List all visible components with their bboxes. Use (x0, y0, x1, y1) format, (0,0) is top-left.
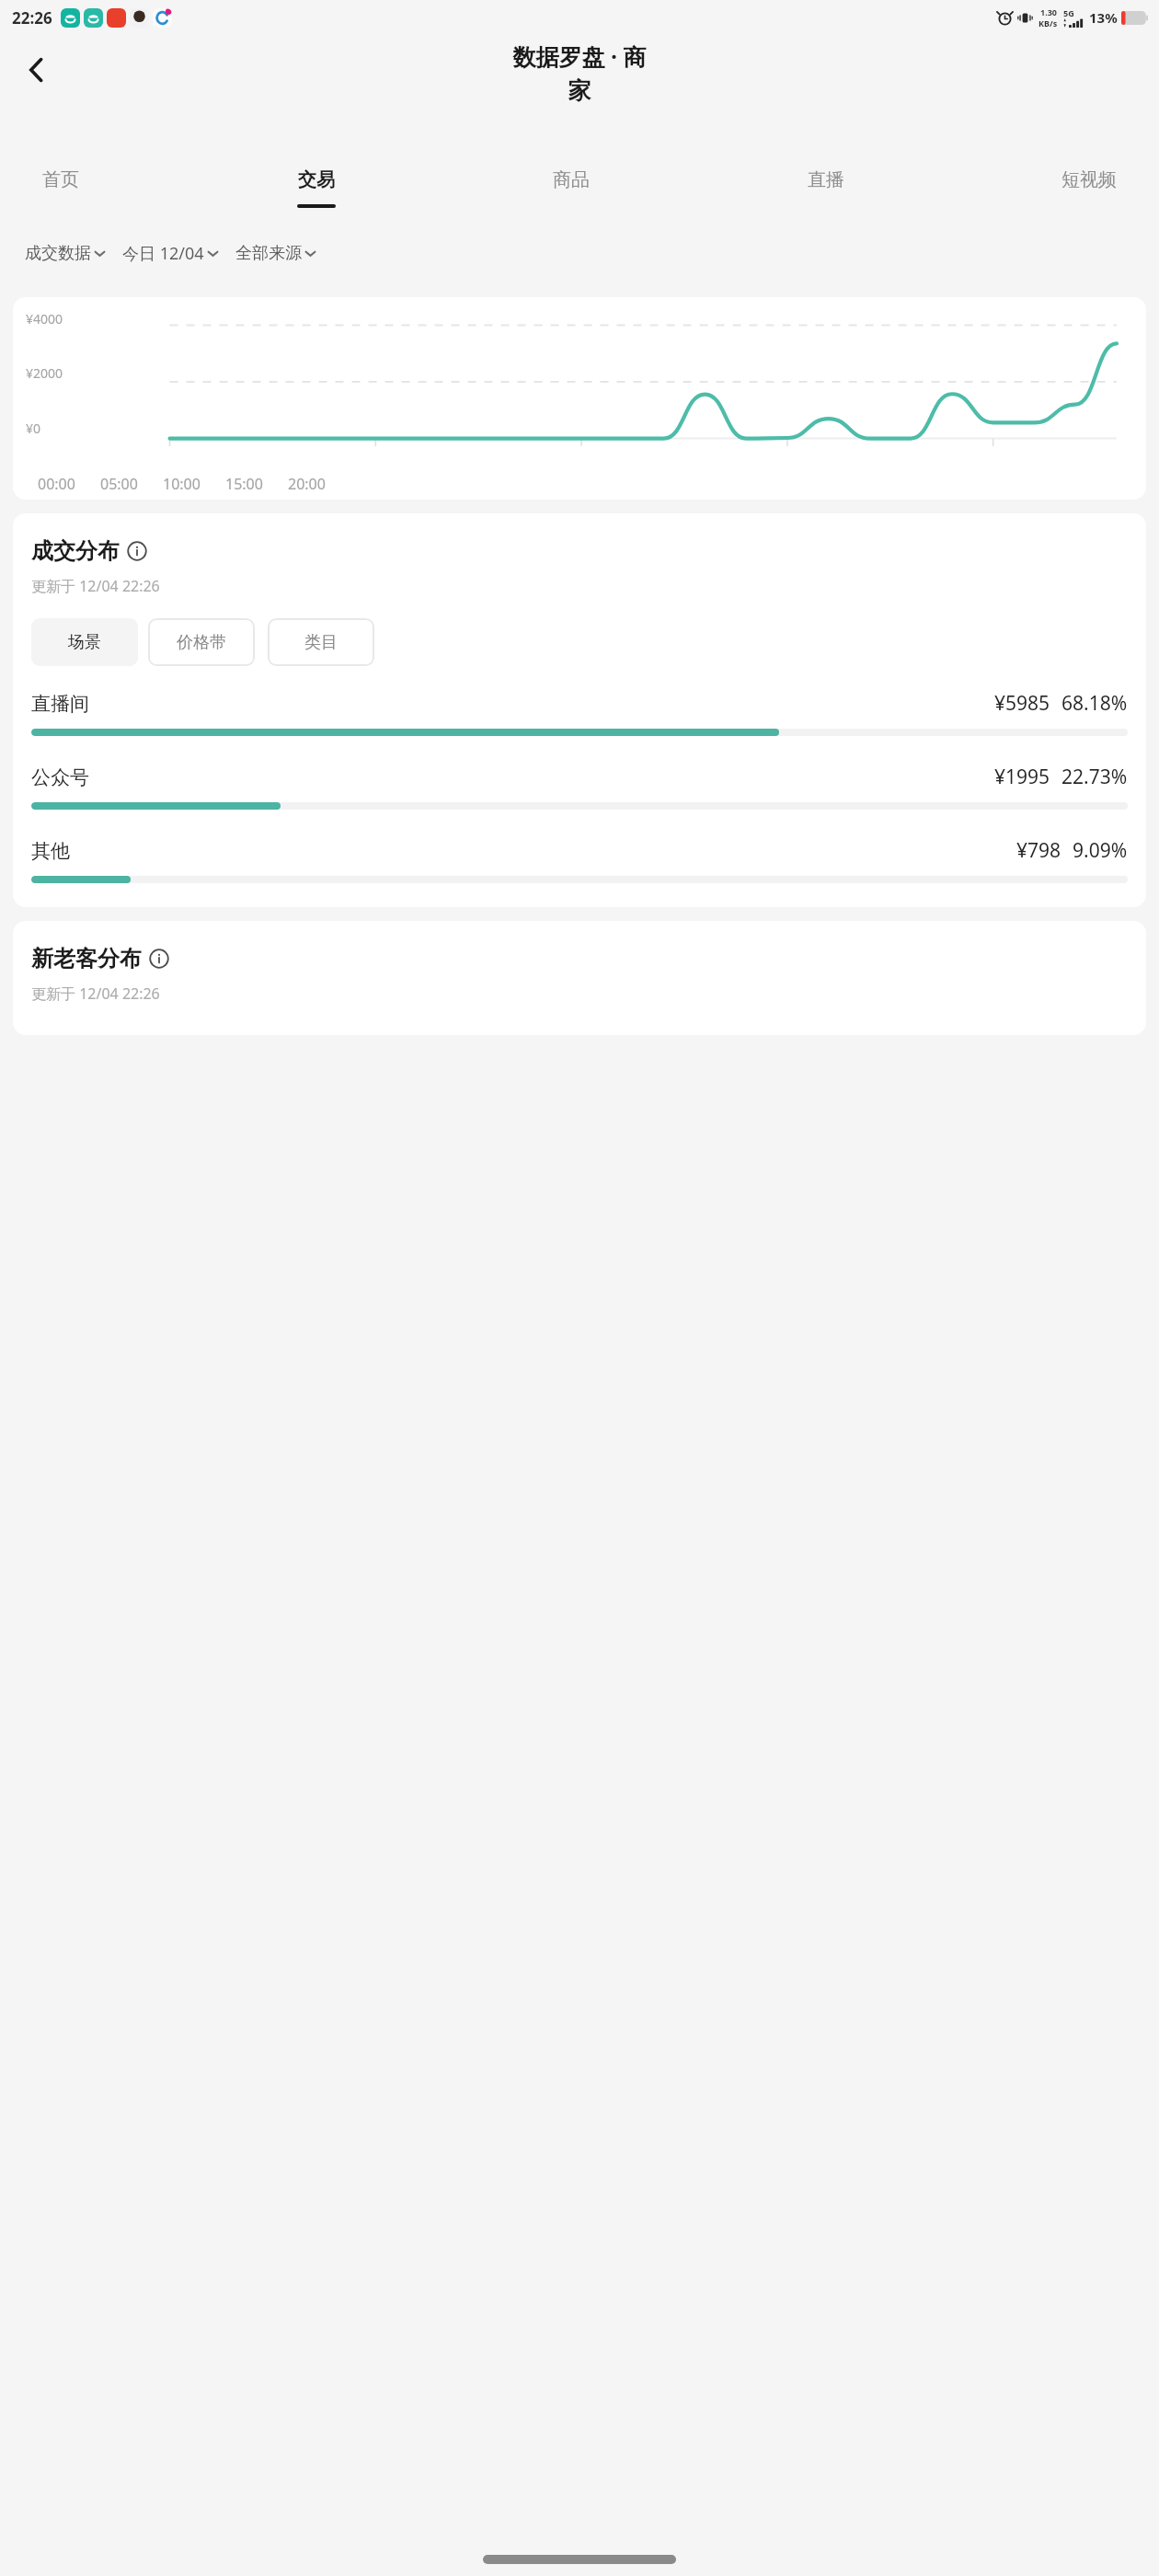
button[interactable]: 直播 (802, 168, 850, 208)
staticText: 交易 (298, 168, 335, 191)
staticText: 05:00 (100, 474, 138, 494)
button[interactable]: 首页 (37, 168, 85, 208)
staticText: 场景 (68, 632, 101, 653)
staticText: 更新于 12/04 22:26 (31, 576, 160, 596)
staticText: 直播间 (31, 692, 89, 716)
button[interactable]: Info (149, 949, 169, 969)
staticText: 10:00 (163, 474, 201, 494)
staticText: 数据罗盘 · 商 家 (465, 40, 694, 105)
staticText: 1.30 (1040, 6, 1057, 17)
staticText: 全部来源 (235, 243, 302, 264)
staticText: 直播 (808, 168, 844, 191)
staticText: 其他 (31, 839, 70, 863)
staticText: 20:00 (288, 474, 326, 494)
button[interactable]: 成交数据 (20, 237, 110, 270)
staticText: 价格带 (177, 632, 226, 653)
button[interactable]: Info (127, 541, 147, 561)
staticText: ¥0 (26, 420, 41, 437)
staticText: ¥2000 (26, 364, 63, 382)
staticText: 公众号 (31, 765, 89, 789)
staticText: 今日 12/04 (122, 242, 204, 265)
staticText: ¥4000 (26, 310, 63, 328)
button[interactable]: 交易 (292, 168, 341, 208)
button[interactable]: ¥4000 (13, 297, 1146, 500)
staticText: 新老客分布 (31, 945, 142, 972)
staticText: 15:00 (225, 474, 263, 494)
button[interactable]: 今日 12/04 (118, 236, 224, 270)
button[interactable]: 价格带 (148, 618, 255, 666)
button[interactable]: 类目 (268, 618, 374, 666)
staticText: 商品 (553, 168, 590, 191)
button[interactable]: 场景 (31, 618, 138, 666)
staticText: 00:00 (38, 474, 75, 494)
staticText: 更新于 12/04 22:26 (31, 983, 160, 1004)
staticText: ¥5985 (994, 690, 1050, 717)
staticText: ¥798 (1016, 837, 1061, 864)
staticText: 68.18% (1061, 690, 1128, 717)
button[interactable]: 全部来源 (231, 237, 321, 270)
staticText: 13% (1089, 8, 1118, 27)
staticText: 短视频 (1061, 168, 1117, 191)
staticText: 9.09% (1073, 837, 1128, 864)
staticText: 22.73% (1061, 764, 1128, 790)
staticText: 5G (1063, 7, 1074, 18)
staticText: 成交分布 (31, 537, 120, 565)
staticText: 类目 (304, 632, 338, 653)
staticText: 22:26 (12, 7, 52, 29)
staticText: KB/s (1039, 17, 1058, 29)
button[interactable]: Back (9, 42, 64, 98)
button[interactable]: 短视频 (1056, 168, 1122, 208)
staticText: 首页 (42, 168, 79, 191)
staticText: 成交数据 (25, 243, 91, 264)
staticText: ¥1995 (994, 764, 1050, 790)
button[interactable]: 商品 (547, 168, 595, 208)
